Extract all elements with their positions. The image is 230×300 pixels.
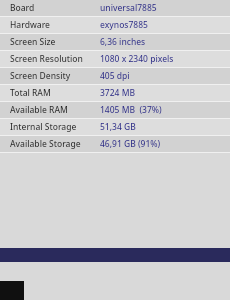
staticText: 51,34 GB [100,121,136,133]
staticText: Total RAM [10,87,51,99]
button[interactable]: Screen Resolution [0,51,230,67]
button[interactable]: Internal Storage [0,119,230,135]
button[interactable]: Screen Size [0,34,230,50]
staticText: Screen Size [10,36,56,48]
staticText: Internal Storage [10,121,77,133]
button[interactable]: Board [0,0,230,16]
button[interactable]: Hardware [0,17,230,33]
button[interactable]: Available Storage [0,136,230,152]
staticText: 3724 MB [100,87,136,99]
staticText: 46,91 GB (91%) [100,138,161,150]
staticText: 405 dpi [100,70,130,82]
staticText: universal7885 [100,2,157,14]
staticText: Board [10,2,35,14]
staticText: Hardware [10,19,50,31]
staticText: 6,36 inches [100,36,146,48]
staticText: 1080 x 2340 pixels [100,53,174,65]
button[interactable]: Total RAM [0,85,230,101]
staticText: Screen Resolution [10,53,83,65]
staticText: 1405 MB (37%) [100,104,162,116]
button[interactable]: Screen Density [0,68,230,84]
staticText: Available Storage [10,138,81,150]
staticText: Screen Density [10,70,71,82]
button[interactable]: Available RAM [0,102,230,118]
staticText: exynos7885 [100,19,148,31]
staticText: Available RAM [10,104,68,116]
